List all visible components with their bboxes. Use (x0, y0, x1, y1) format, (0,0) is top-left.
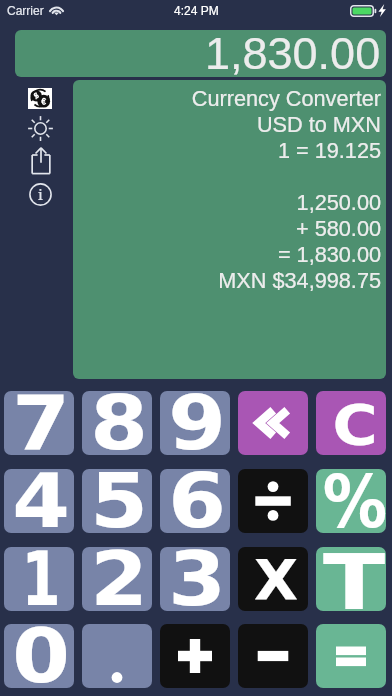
button[interactable]: Decimal point (82, 624, 152, 688)
button[interactable]: 3 (160, 547, 230, 611)
button[interactable]: % (316, 469, 386, 533)
staticText: 8 (90, 380, 148, 466)
staticText: 1 (21, 536, 61, 622)
button[interactable]: 2 (82, 547, 152, 611)
button[interactable]: Share (28, 146, 54, 176)
staticText: Carrier (7, 4, 44, 17)
button[interactable]: Currency converter (28, 88, 52, 109)
staticText: 4:24 PM (174, 4, 219, 17)
button[interactable]: X (238, 547, 308, 611)
button[interactable]: 5 (82, 469, 152, 533)
button[interactable]: C (316, 391, 386, 455)
button[interactable]: T (316, 547, 386, 611)
button[interactable]: 1,830.00 (15, 30, 386, 77)
button[interactable]: 6 (160, 469, 230, 533)
button[interactable]: 9 (160, 391, 230, 455)
button[interactable]: 8 (82, 391, 152, 455)
button[interactable]: 0 (4, 624, 74, 688)
button[interactable]: Backspace (238, 391, 308, 455)
button[interactable]: Divide (238, 469, 308, 533)
staticText: 2 (90, 536, 148, 622)
button[interactable]: 4 (4, 469, 74, 533)
staticText: i (38, 184, 43, 204)
button[interactable]: Equals (316, 624, 386, 688)
staticText: T (323, 538, 385, 626)
staticText: 5 (90, 458, 148, 544)
button[interactable]: Brightness (27, 115, 54, 142)
button[interactable]: 1 (4, 547, 74, 611)
button[interactable]: 7 (4, 391, 74, 455)
staticText: X (254, 547, 298, 612)
staticText: 4 (12, 458, 70, 544)
staticText: 9 (168, 380, 226, 466)
staticText: 3 (168, 536, 226, 622)
staticText: 7 (12, 380, 70, 466)
staticText: C (332, 392, 378, 457)
button[interactable]: Minus (238, 624, 308, 688)
button[interactable]: Plus (160, 624, 230, 688)
staticText: 0 (12, 613, 70, 696)
button[interactable]: Info (29, 183, 52, 206)
staticText: Currency Converter USD to MXN 1 = 19.125… (73, 86, 381, 293)
staticText: 1,830.00 (205, 30, 381, 75)
staticText: % (322, 459, 387, 544)
staticText: 6 (168, 458, 226, 544)
